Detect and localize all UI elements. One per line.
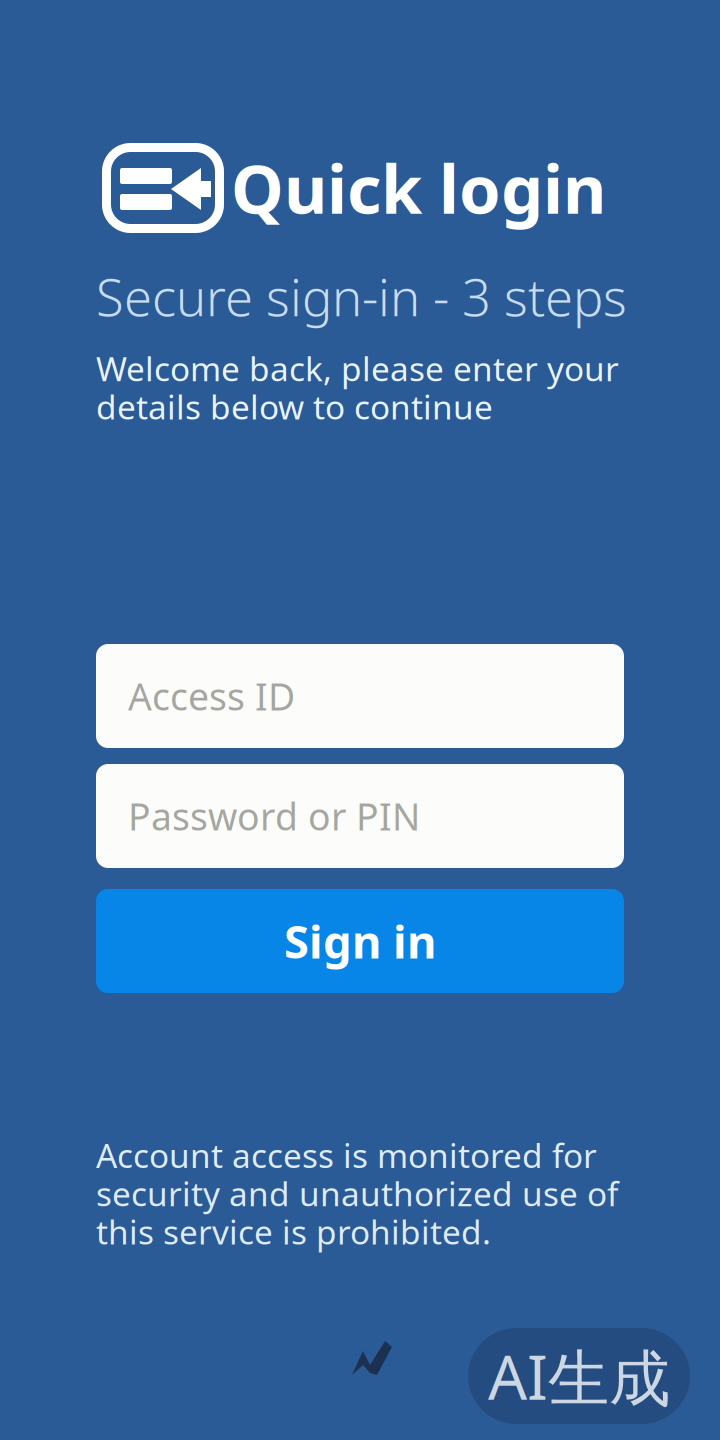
staticText: Sign in	[284, 911, 436, 971]
staticText: Welcome back, please enter your details …	[96, 346, 619, 429]
button[interactable]: Access ID	[96, 644, 624, 748]
button[interactable]: Password or PIN	[96, 764, 624, 868]
staticText: Access ID	[128, 671, 295, 721]
staticText: Secure sign-in - 3 steps	[96, 263, 627, 330]
staticText: Quick login	[231, 144, 606, 232]
staticText: Password or PIN	[128, 791, 420, 841]
button[interactable]: Sign in	[96, 889, 624, 993]
staticText: AI生成	[488, 1335, 670, 1417]
staticText: Account access is monitored for security…	[96, 1133, 618, 1254]
